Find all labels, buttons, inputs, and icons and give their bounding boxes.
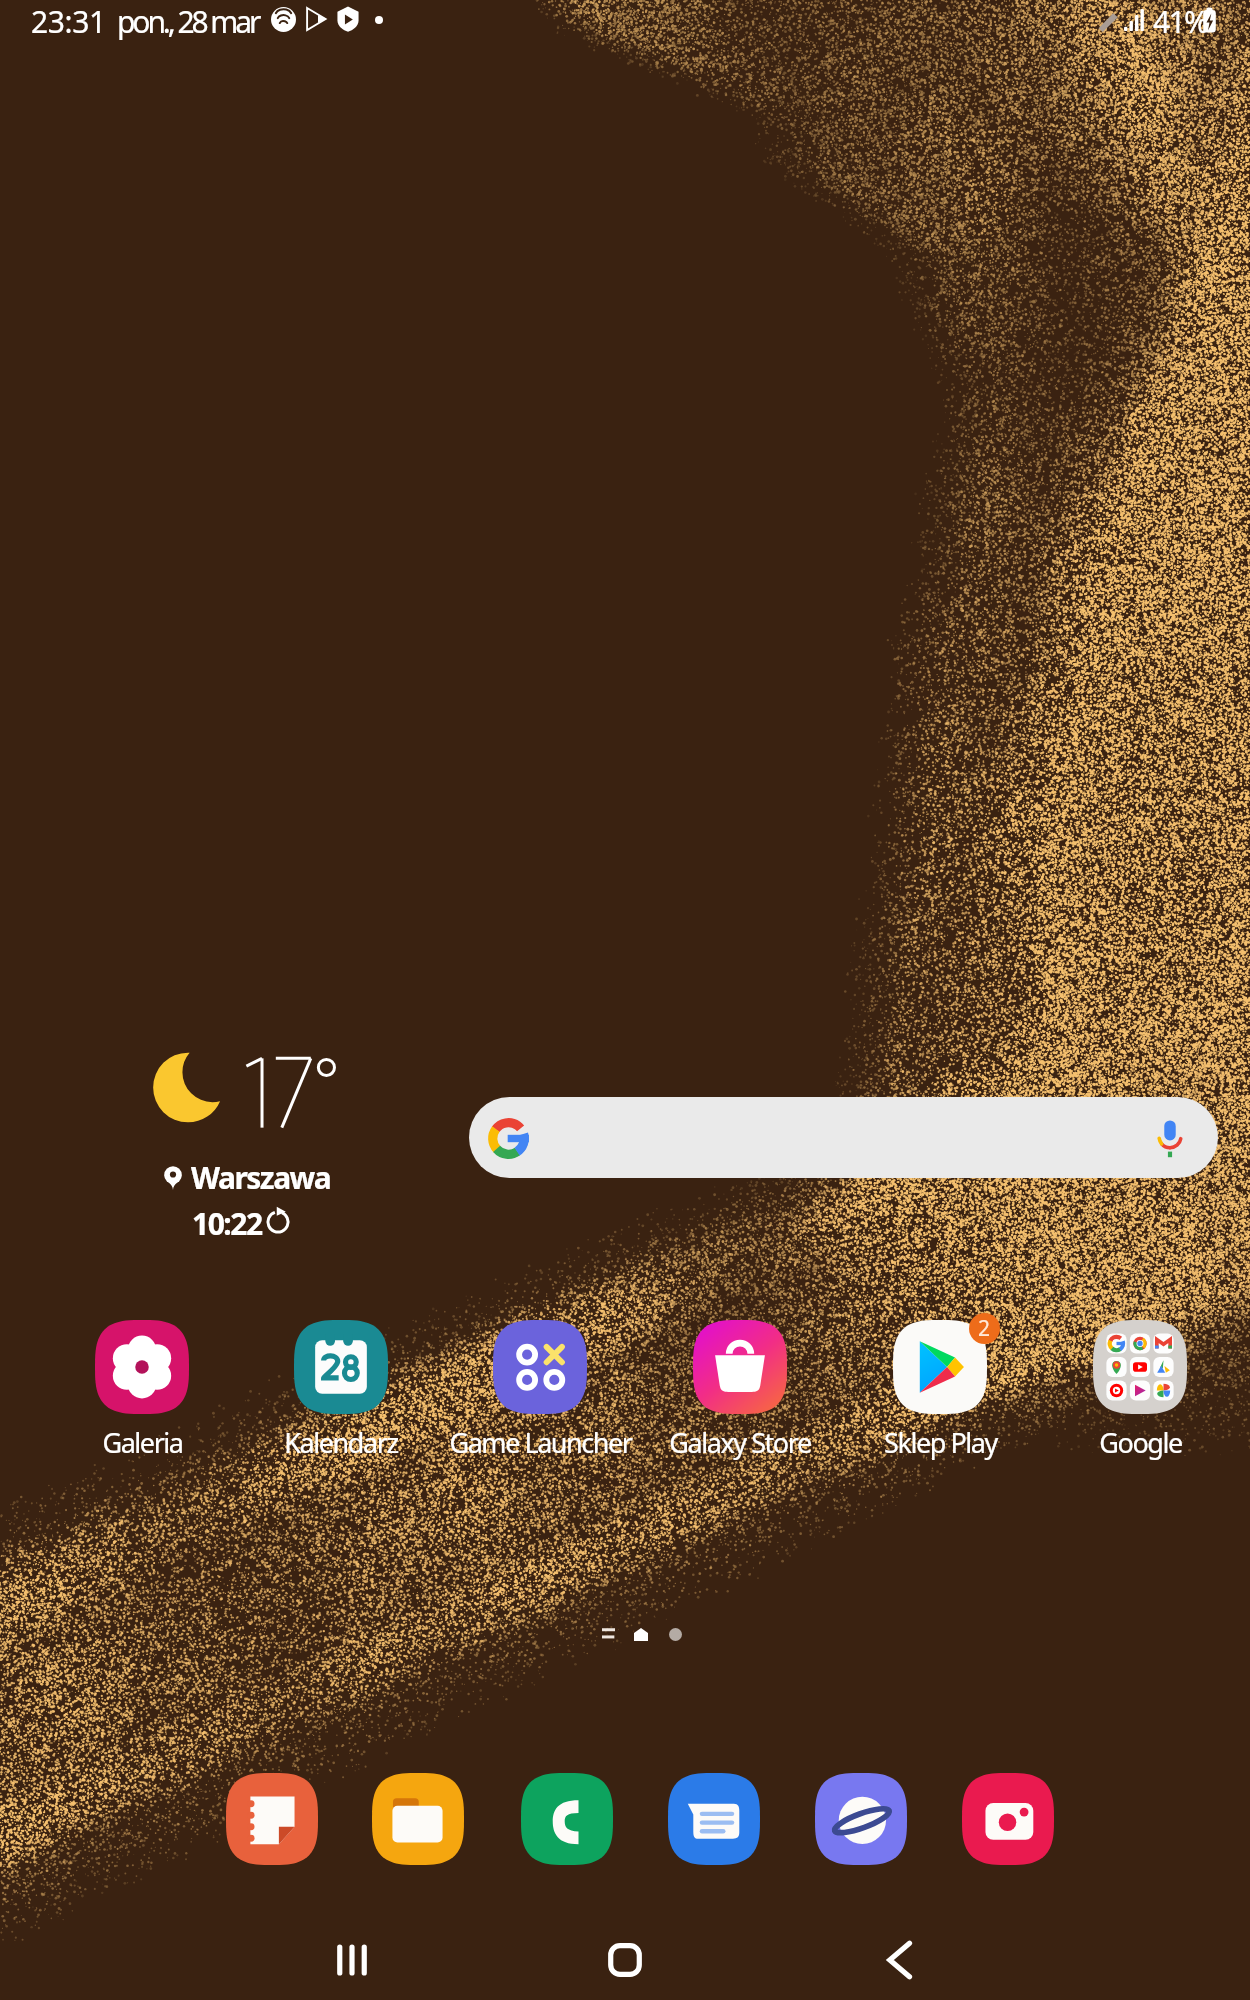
staticText: Game Launcher (449, 1424, 632, 1461)
button[interactable]: My Files (372, 1773, 464, 1865)
staticText: Galaxy Store (669, 1424, 811, 1461)
staticText: Sklep Play (884, 1424, 997, 1461)
staticText: pon., 28 mar (117, 1, 259, 42)
button[interactable]: Search (469, 1097, 1218, 1178)
button[interactable]: Back (844, 1915, 956, 2000)
staticText: Kalendarz (284, 1424, 398, 1461)
button[interactable]: Messages (668, 1773, 760, 1865)
staticText: Google (1099, 1424, 1182, 1461)
staticText: Warszawa (191, 1157, 331, 1198)
button[interactable]: Internet (815, 1773, 907, 1865)
button[interactable]: 2 (830, 1320, 1050, 1461)
button[interactable]: Weather, 17 degrees, Warszawa (150, 1040, 360, 1245)
staticText: 10:22 (192, 1203, 262, 1244)
button[interactable]: Galeria (32, 1320, 252, 1461)
button[interactable]: Home page (619, 1612, 663, 1656)
button[interactable]: Phone (521, 1773, 613, 1865)
button[interactable]: Google (1030, 1320, 1250, 1461)
button[interactable]: Galaxy Store (630, 1320, 850, 1461)
staticText: 2 (978, 1314, 991, 1343)
staticText: Galeria (102, 1424, 183, 1461)
button[interactable]: Game Launcher (430, 1320, 650, 1461)
button[interactable]: Feed page (586, 1612, 630, 1656)
button[interactable]: Notes (226, 1773, 318, 1865)
button[interactable]: Home (569, 1915, 681, 2000)
button[interactable]: Second page (653, 1612, 697, 1656)
staticText: 23:31 (31, 1, 106, 42)
button[interactable]: Recents (296, 1915, 408, 2000)
button[interactable]: Kalendarz (231, 1320, 451, 1461)
button[interactable]: Camera (962, 1773, 1054, 1865)
staticText: 41% (1153, 1, 1208, 42)
